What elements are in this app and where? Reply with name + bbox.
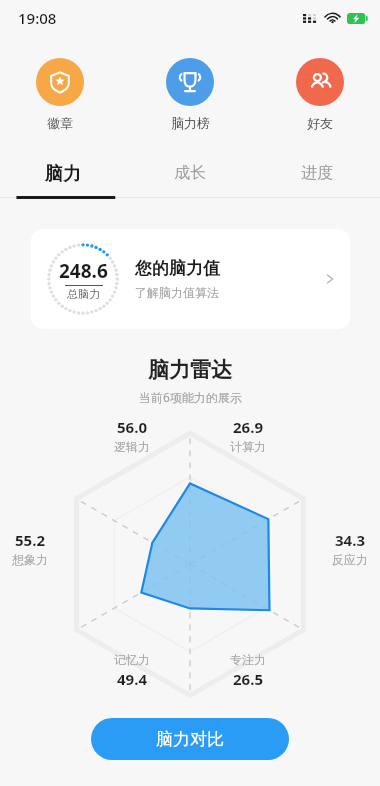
button[interactable]: 好友	[290, 56, 350, 133]
staticText: 逻辑力	[114, 439, 150, 454]
staticText: 34.3	[335, 530, 365, 550]
button[interactable]: 脑力	[0, 153, 126, 196]
staticText: 脑力榜	[171, 115, 210, 131]
button[interactable]: 进度	[253, 153, 380, 193]
button[interactable]: 脑力对比	[91, 718, 289, 760]
staticText: 好友	[307, 115, 333, 131]
staticText: 19:08	[18, 8, 57, 28]
button[interactable]: 脑力榜	[160, 56, 220, 133]
staticText: 专注力	[230, 652, 266, 667]
staticText: 进度	[301, 163, 333, 183]
staticText: 55.2	[15, 530, 45, 550]
button[interactable]: 徽章	[30, 56, 90, 133]
staticText: 脑力对比	[156, 729, 224, 750]
staticText: 徽章	[47, 115, 73, 131]
staticText: 总脑力	[67, 287, 100, 301]
button[interactable]: 成长	[126, 153, 253, 193]
staticText: 您的脑力值	[135, 258, 220, 279]
staticText: 脑力雷达	[148, 357, 232, 383]
button[interactable]: 248.6	[31, 229, 350, 329]
staticText: 56.0	[117, 417, 147, 437]
staticText: 脑力	[45, 163, 81, 186]
staticText: 248.6	[59, 258, 108, 284]
staticText: 了解脑力值算法	[135, 285, 219, 300]
staticText: 26.9	[233, 417, 263, 437]
staticText: 想象力	[12, 552, 48, 567]
staticText: 49.4	[117, 669, 147, 689]
staticText: 当前6项能力的展示	[139, 389, 242, 405]
staticText: 成长	[174, 163, 206, 183]
staticText: 计算力	[230, 439, 266, 454]
staticText: 记忆力	[114, 652, 150, 667]
staticText: 反应力	[332, 552, 368, 567]
staticText: 26.5	[233, 669, 263, 689]
